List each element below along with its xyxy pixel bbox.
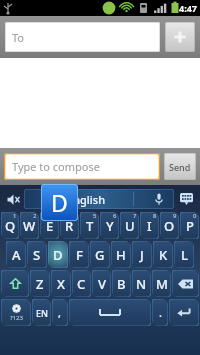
staticText: I — [147, 217, 152, 235]
button[interactable]: Q — [1, 212, 19, 239]
staticText: W — [23, 217, 36, 235]
staticText: D — [51, 187, 68, 218]
staticText: 9 — [173, 212, 177, 220]
staticText: 5 — [93, 212, 97, 220]
staticText: 7 — [133, 212, 137, 220]
button[interactable]: M — [152, 270, 171, 297]
staticText: Type to compose — [12, 159, 100, 174]
button[interactable]: I — [140, 212, 159, 239]
button[interactable]: B — [112, 270, 131, 297]
button[interactable]: H — [111, 241, 131, 268]
staticText: L — [181, 246, 188, 264]
staticText: J — [140, 246, 144, 264]
staticText: EN — [36, 307, 48, 319]
staticText: 8 — [153, 212, 157, 220]
button[interactable]: T — [80, 212, 99, 239]
button[interactable]: To — [5, 22, 160, 52]
staticText: 1 — [13, 212, 17, 220]
staticText: Send — [169, 161, 191, 173]
staticText: 4:47 — [179, 2, 197, 14]
staticText: E — [46, 217, 54, 235]
button[interactable]: D — [48, 241, 68, 268]
staticText: U — [125, 217, 135, 235]
button[interactable]: X — [51, 270, 71, 297]
staticText: To — [12, 30, 25, 45]
staticText: A — [12, 246, 21, 264]
button[interactable]: Voice input — [155, 193, 163, 205]
staticText: 2 — [33, 212, 37, 220]
button[interactable]: P — [180, 212, 199, 239]
button[interactable]: Y — [100, 212, 119, 239]
button[interactable]: C — [72, 270, 91, 297]
staticText: , — [58, 305, 62, 320]
button[interactable]: J — [132, 241, 152, 268]
staticText: ?123 — [10, 314, 23, 322]
staticText: 3 — [53, 212, 57, 220]
button[interactable]: O — [160, 212, 179, 239]
staticText: P — [186, 217, 194, 235]
button[interactable]: U — [120, 212, 139, 239]
staticText: C — [77, 275, 86, 293]
staticText: Z — [36, 275, 44, 293]
button[interactable]: R — [60, 212, 79, 239]
staticText: 4 — [73, 212, 77, 220]
staticText: Y — [106, 217, 114, 235]
button[interactable]: V — [92, 270, 111, 297]
staticText: K — [159, 246, 168, 264]
button[interactable]: L — [174, 241, 194, 268]
button[interactable]: Type to compose — [4, 153, 160, 180]
button[interactable]: A — [6, 241, 26, 268]
staticText: V — [98, 275, 106, 293]
button[interactable]: E — [40, 212, 59, 239]
button[interactable]: . — [152, 299, 168, 326]
button[interactable]: S — [27, 241, 47, 268]
button[interactable]: Keyboard settings — [174, 188, 198, 210]
button[interactable]: Voice off — [2, 188, 24, 210]
staticText: O — [164, 217, 175, 235]
button[interactable]: W — [20, 212, 39, 239]
button[interactable]: Z — [30, 270, 50, 297]
staticText: H — [116, 246, 126, 264]
staticText: D — [53, 246, 63, 264]
button[interactable]: , — [52, 299, 68, 326]
staticText: B — [117, 275, 126, 293]
button[interactable]: Backspace — [172, 270, 199, 297]
button[interactable]: Add recipient — [165, 22, 195, 52]
button[interactable]: D key preview — [41, 184, 78, 221]
staticText: X — [57, 275, 65, 293]
button[interactable]: English — [24, 189, 174, 209]
staticText: English — [67, 192, 106, 207]
button[interactable]: N — [132, 270, 151, 297]
button[interactable]: Enter — [169, 299, 199, 326]
button[interactable]: Shift — [1, 270, 29, 297]
button[interactable]: Send — [164, 153, 196, 180]
button[interactable]: Symbols — [1, 299, 31, 326]
staticText: N — [136, 275, 147, 293]
button[interactable]: K — [153, 241, 173, 268]
staticText: M — [156, 275, 168, 293]
staticText: T — [86, 217, 94, 235]
button[interactable]: EN — [32, 299, 51, 326]
staticText: S — [33, 246, 41, 264]
button[interactable]: F — [69, 241, 89, 268]
staticText: 6 — [113, 212, 117, 220]
staticText: R — [65, 217, 74, 235]
staticText: F — [76, 246, 83, 264]
staticText: 0 — [193, 212, 197, 220]
button[interactable]: G — [90, 241, 110, 268]
staticText: . — [159, 305, 162, 320]
staticText: Q — [5, 217, 16, 235]
staticText: G — [95, 246, 105, 264]
button[interactable]: Space — [69, 299, 151, 326]
